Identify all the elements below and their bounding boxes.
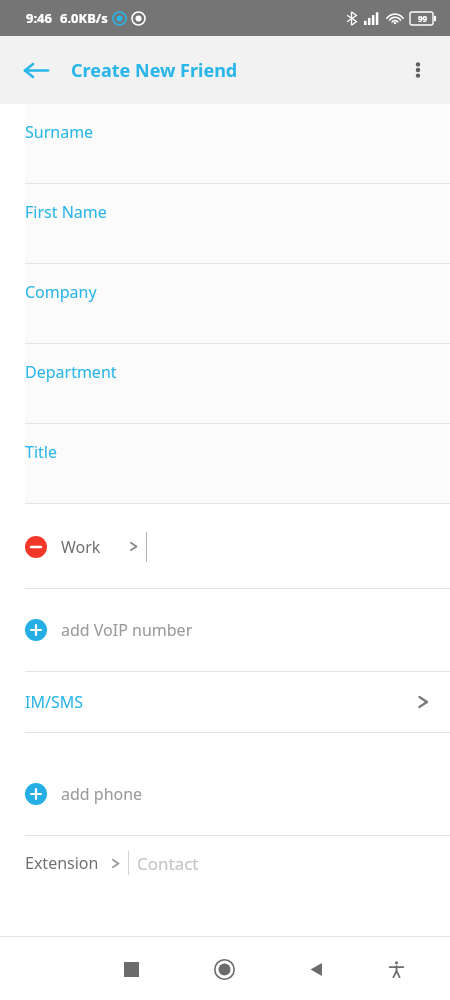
staticText: Contact <box>137 852 199 875</box>
button[interactable]: add VoIP number <box>0 589 450 671</box>
button[interactable]: IM/SMS <box>0 672 450 732</box>
staticText: First Name <box>25 201 107 223</box>
staticText: Create New Friend <box>71 58 238 83</box>
staticText: add VoIP number <box>61 619 193 641</box>
button[interactable]: Back <box>14 48 58 92</box>
staticText: Work <box>61 536 101 558</box>
button[interactable]: Accessibility <box>372 945 420 993</box>
button[interactable]: Home <box>200 945 248 993</box>
staticText: 9:46 <box>26 9 52 27</box>
button[interactable]: More options <box>394 46 442 94</box>
button[interactable]: Create New Friend <box>71 58 238 83</box>
staticText: add phone <box>61 783 143 805</box>
staticText: 6.0KB/s <box>60 9 108 27</box>
button[interactable]: Extension <box>0 836 450 890</box>
button[interactable]: Title <box>0 424 450 504</box>
button[interactable]: Company <box>0 264 450 344</box>
staticText: IM/SMS <box>25 691 83 713</box>
button[interactable]: Back <box>292 945 340 993</box>
button[interactable]: Remove <box>0 505 450 588</box>
button[interactable]: First Name <box>0 184 450 264</box>
staticText: Department <box>25 361 117 383</box>
button[interactable]: Recents <box>107 945 155 993</box>
button[interactable]: add phone <box>0 753 450 835</box>
other: Remove <box>25 536 47 558</box>
staticText: Surname <box>25 121 94 143</box>
staticText: Company <box>25 281 97 303</box>
button[interactable]: Department <box>0 344 450 424</box>
staticText: 99 <box>418 13 428 24</box>
staticText: Title <box>25 441 57 463</box>
button[interactable]: Surname <box>0 104 450 184</box>
staticText: Extension <box>25 852 99 874</box>
